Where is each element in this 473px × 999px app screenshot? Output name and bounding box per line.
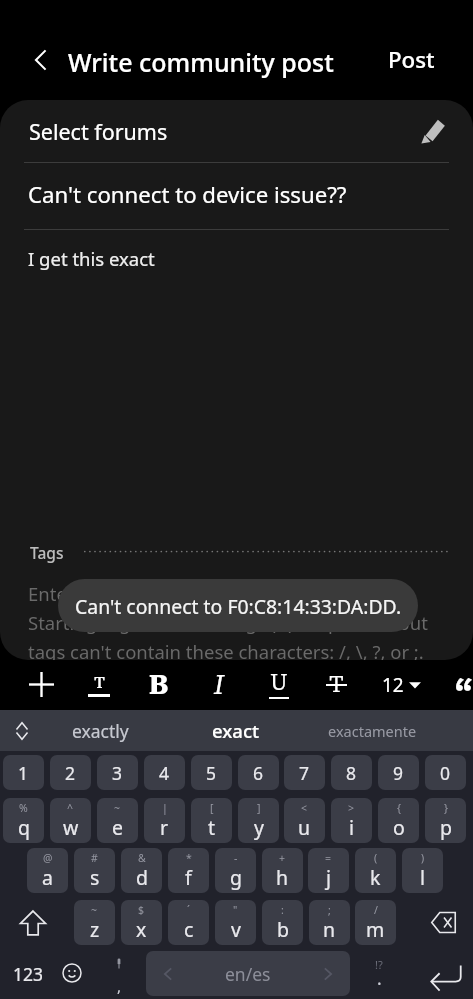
button[interactable]: Voice input <box>97 951 141 997</box>
button[interactable]: " <box>215 900 256 945</box>
button[interactable]: 2 <box>50 755 91 790</box>
button[interactable]: Font size <box>374 659 428 710</box>
button[interactable]: !? <box>357 951 401 997</box>
staticText: ~ <box>91 903 98 917</box>
button[interactable]: * <box>168 848 209 893</box>
button[interactable]: Emoji <box>50 950 94 996</box>
button[interactable]: Insert <box>14 659 68 710</box>
staticText: | <box>162 801 168 815</box>
button[interactable]: 7 <box>284 755 325 790</box>
button[interactable]: Bold <box>132 659 186 710</box>
staticText: @ <box>43 851 53 865</box>
button[interactable]: Quote <box>437 659 473 710</box>
staticText: & <box>138 851 146 865</box>
staticText: !? <box>375 957 383 972</box>
staticText: j <box>326 864 332 891</box>
staticText: = <box>325 851 332 865</box>
button[interactable]: ~ <box>97 798 138 843</box>
button[interactable]: Shift <box>8 900 58 945</box>
button[interactable]: [ <box>191 798 232 843</box>
button[interactable]: & <box>121 848 162 893</box>
staticText: Post <box>388 44 435 74</box>
button[interactable]: @ <box>27 848 68 893</box>
staticText: > <box>348 801 355 815</box>
button[interactable]: Backspace <box>418 900 468 945</box>
button[interactable]: en/es <box>146 951 350 996</box>
staticText: ( <box>374 851 378 865</box>
staticText: ~ <box>114 801 121 815</box>
button[interactable]: Expand suggestions <box>0 710 43 751</box>
button[interactable]: ~ <box>74 900 115 945</box>
button[interactable]: Italic <box>192 659 246 710</box>
staticText: y <box>254 814 264 841</box>
staticText: 7 <box>299 761 310 785</box>
button[interactable]: # <box>74 848 115 893</box>
button[interactable]: 5 <box>191 755 232 790</box>
staticText: Write community post <box>68 45 334 79</box>
button[interactable]: Post <box>371 38 451 80</box>
staticText: ) <box>421 851 425 865</box>
button[interactable]: Text style <box>72 659 126 710</box>
button[interactable]: ( <box>355 848 396 893</box>
button[interactable]: exact <box>176 710 296 751</box>
button[interactable]: ^ <box>50 798 91 843</box>
staticText: n <box>323 916 336 943</box>
button[interactable]: 4 <box>144 755 185 790</box>
button[interactable]: Select forums <box>0 100 473 162</box>
staticText: I <box>214 669 225 701</box>
staticText: exactamente <box>328 721 417 741</box>
staticText: Can't connect to device issue?? <box>28 179 347 209</box>
button[interactable]: ] <box>238 798 279 843</box>
staticText: v <box>231 916 241 943</box>
button[interactable]: Edit title <box>415 114 449 148</box>
staticText: m <box>366 916 385 943</box>
staticText: * <box>186 851 192 865</box>
button[interactable]: 1 <box>3 755 44 790</box>
staticText: # <box>91 851 98 865</box>
staticText: < <box>301 801 308 815</box>
button[interactable]: { <box>378 798 419 843</box>
button[interactable]: exactamente <box>312 710 432 751</box>
button[interactable]: Underline <box>252 659 306 710</box>
button[interactable]: 8 <box>331 755 372 790</box>
button[interactable]: 0 <box>425 755 466 790</box>
button[interactable]: Enter <box>421 956 471 999</box>
button[interactable]: ; <box>309 900 350 945</box>
button[interactable]: $ <box>121 900 162 945</box>
staticText: x <box>136 916 147 943</box>
button[interactable]: < <box>284 798 325 843</box>
button[interactable]: Back <box>20 39 62 81</box>
button[interactable]: = <box>308 848 349 893</box>
button[interactable]: 123 <box>5 951 51 997</box>
button[interactable]: : <box>262 900 303 945</box>
button[interactable]: 6 <box>238 755 279 790</box>
staticText: ] <box>257 801 261 815</box>
button[interactable]: } <box>425 798 466 843</box>
staticText: c <box>184 916 194 943</box>
button[interactable]: + <box>262 848 303 893</box>
staticText: e <box>112 814 123 841</box>
staticText: exact <box>212 718 260 743</box>
button[interactable]: - <box>215 848 256 893</box>
button[interactable]: ´ <box>168 900 209 945</box>
button[interactable]: > <box>331 798 372 843</box>
staticText: d <box>136 864 148 891</box>
button[interactable]: / <box>355 900 396 945</box>
staticText: B <box>149 669 169 701</box>
staticText: , <box>117 976 122 996</box>
staticText: " <box>233 903 238 917</box>
staticText: I get this exact <box>28 246 155 271</box>
staticText: l <box>420 864 426 891</box>
staticText: o <box>393 814 405 841</box>
button[interactable]: 3 <box>97 755 138 790</box>
button[interactable]: | <box>144 798 185 843</box>
button[interactable]: % <box>3 798 44 843</box>
staticText: 123 <box>13 962 44 986</box>
button[interactable]: exactly <box>40 710 160 751</box>
button[interactable]: 9 <box>378 755 419 790</box>
button[interactable]: ) <box>402 848 443 893</box>
staticText: 8 <box>346 761 357 785</box>
button[interactable]: Strikethrough <box>309 659 363 710</box>
staticText: “ <box>455 671 473 713</box>
staticText: w <box>63 814 79 841</box>
